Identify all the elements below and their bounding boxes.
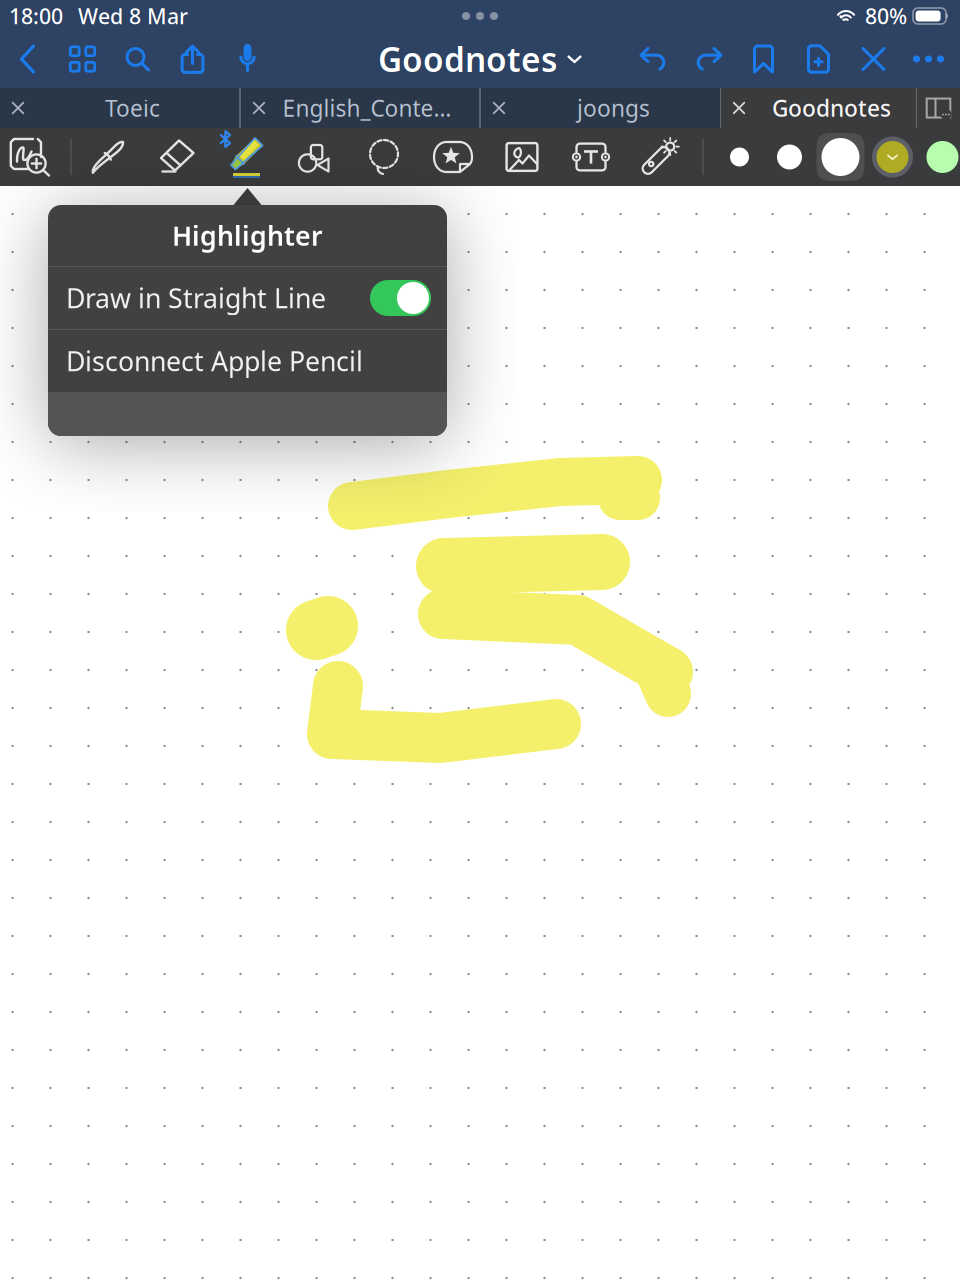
button[interactable]: More [901, 32, 956, 86]
button[interactable]: Draw in Straight Line [48, 267, 447, 329]
button[interactable]: Shapes [280, 128, 349, 186]
button[interactable]: Undo [626, 32, 681, 86]
button[interactable]: Split view [916, 88, 960, 128]
staticText: Draw in Straight Line [66, 280, 326, 316]
staticText: 18:00 [9, 2, 63, 30]
staticText: Disconnect Apple Pencil [66, 343, 363, 379]
button[interactable]: Thin width [720, 128, 758, 186]
button[interactable]: Thumbnails [55, 32, 110, 86]
button[interactable]: Image [487, 128, 556, 186]
button[interactable]: Yellow [868, 128, 916, 186]
button[interactable]: Elements [625, 128, 694, 186]
button[interactable]: Add page [791, 32, 846, 86]
button[interactable]: joongs [480, 88, 720, 128]
button[interactable]: Disconnect Apple Pencil [48, 330, 447, 392]
button[interactable]: Back [0, 32, 55, 86]
button[interactable]: Pen [73, 128, 142, 186]
staticText: joongs [577, 93, 650, 123]
staticText: Toeic [105, 93, 160, 123]
button[interactable]: Record audio [220, 32, 275, 86]
button[interactable]: Thick width [812, 128, 868, 186]
button[interactable]: Text box [556, 128, 625, 186]
staticText: Goodnotes [378, 37, 557, 81]
button[interactable]: Search [110, 32, 165, 86]
staticText: Highlighter [172, 218, 323, 253]
button[interactable]: Eraser [142, 128, 211, 186]
button[interactable]: Goodnotes [720, 88, 916, 128]
button[interactable]: Toeic [0, 88, 239, 128]
button[interactable]: Goodnotes [378, 32, 582, 86]
button[interactable]: Green [920, 128, 960, 186]
button[interactable]: Close [846, 32, 901, 86]
staticText: Wed 8 Mar [78, 2, 188, 30]
button[interactable]: Highlighter [211, 128, 280, 186]
staticText: English_Content_3… [282, 93, 463, 123]
button[interactable]: English_Content_3… [240, 88, 479, 128]
button[interactable]: Lasso [349, 128, 418, 186]
button[interactable]: Sticker [418, 128, 487, 186]
button[interactable]: Share [165, 32, 220, 86]
button[interactable]: Zoom writing [0, 128, 64, 186]
button[interactable]: Bookmark [736, 32, 791, 86]
staticText: Goodnotes [772, 93, 891, 123]
button[interactable]: Medium width [770, 128, 808, 186]
button[interactable]: Redo [681, 32, 736, 86]
staticText: 80% [865, 2, 907, 30]
